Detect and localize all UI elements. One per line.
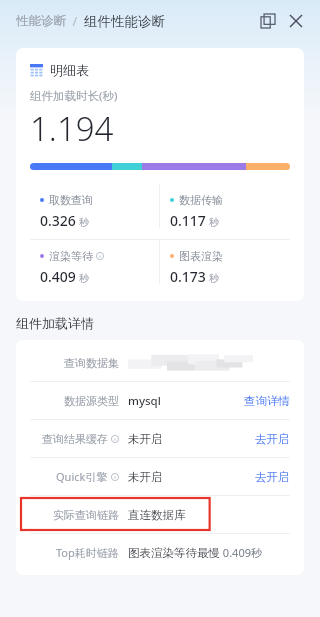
staticText: 0.326 [40, 211, 76, 230]
staticText: 图表渲染等待最慢 [128, 546, 220, 560]
staticText: 查询结果缓存 [42, 432, 108, 446]
button[interactable]: 数据源类型 [16, 382, 304, 419]
staticText: mysql [128, 393, 161, 409]
staticText: 组件性能诊断 [84, 13, 165, 30]
staticText: 性能诊断 [16, 13, 66, 29]
staticText: 秒 [79, 216, 89, 229]
button[interactable]: 实际查询链路 [16, 496, 304, 533]
button[interactable]: Duplicate [254, 7, 282, 35]
staticText: 直连数据库 [128, 508, 186, 522]
staticText: 取数查询 [49, 193, 93, 207]
button[interactable]: 去开启 [251, 428, 294, 450]
staticText: 0.409秒 [220, 545, 262, 560]
staticText: / [66, 13, 84, 30]
staticText: 未开启 [128, 470, 163, 484]
staticText: 渲染等待 [49, 249, 93, 263]
staticText: 查询详情 [244, 394, 290, 408]
staticText: 数据源类型 [64, 394, 119, 408]
staticText: 0.173 [170, 267, 206, 286]
button[interactable]: 渲染等待 [30, 240, 159, 295]
button[interactable]: Top耗时链路 [16, 534, 304, 571]
staticText: 未开启 [128, 432, 163, 446]
staticText: Top耗时链路 [56, 545, 119, 560]
staticText: Quick引擎 [56, 469, 108, 484]
button[interactable]: 明细表 [16, 48, 304, 301]
staticText: 秒 [209, 272, 219, 285]
staticText: 0.117 [170, 211, 206, 230]
button[interactable]: 数据传输 [160, 184, 290, 239]
button[interactable]: 去开启 [251, 466, 294, 488]
staticText: 1.194 [30, 106, 114, 151]
button[interactable]: 查询结果缓存 [16, 420, 304, 457]
staticText: 秒 [79, 272, 89, 285]
staticText: 组件加载详情 [16, 315, 94, 331]
button[interactable]: 查询详情 [240, 390, 294, 412]
button[interactable]: 取数查询 [30, 184, 159, 239]
staticText: 查询数据集 [64, 356, 119, 370]
staticText: 秒 [209, 216, 219, 229]
staticText: 实际查询链路 [53, 508, 119, 522]
button[interactable]: 图表渲染 [160, 240, 290, 295]
staticText: 去开启 [255, 432, 290, 446]
button[interactable]: Close [282, 7, 310, 35]
staticText: 0.409 [40, 267, 76, 286]
button[interactable]: 查询数据集 [16, 344, 304, 381]
staticText: 去开启 [255, 470, 290, 484]
staticText: 数据传输 [179, 193, 223, 207]
staticText: 明细表 [50, 62, 89, 78]
staticText: 图表渲染 [179, 249, 223, 263]
staticText: 组件加载时长(秒) [30, 88, 118, 104]
button[interactable]: Quick引擎 [16, 458, 304, 495]
